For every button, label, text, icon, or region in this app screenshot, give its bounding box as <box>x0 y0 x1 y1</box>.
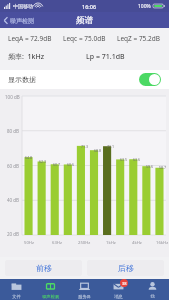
staticText: 前移 <box>36 263 52 273</box>
staticText: Leqc = 75.0dB <box>63 34 106 43</box>
staticText: 后移 <box>118 263 134 273</box>
button[interactable]: 后移 <box>87 260 164 276</box>
staticText: 50Hz <box>24 240 34 246</box>
staticText: 100 dB <box>5 94 20 100</box>
staticText: 64.8 <box>25 155 33 160</box>
staticText: 60.6 <box>67 162 75 167</box>
staticText: 100% <box>138 3 151 10</box>
staticText: 噪声检测 <box>42 294 59 299</box>
staticText: 显示数据 <box>8 75 36 84</box>
button[interactable]: 文件 <box>0 279 33 300</box>
staticText: 80 dB <box>7 128 20 134</box>
button[interactable]: 服务器 <box>67 279 101 300</box>
button[interactable]: 噪声检测 <box>33 279 67 300</box>
button[interactable]: 显示数据 <box>0 70 169 89</box>
staticText: 噪声检测 <box>10 17 34 25</box>
staticText: 我 <box>150 294 155 299</box>
staticText: 20 dB <box>7 231 20 237</box>
staticText: 1kHz <box>106 240 116 246</box>
staticText: 16:06 <box>82 3 97 10</box>
staticText: 58.7 <box>159 165 167 170</box>
button[interactable]: 消息 <box>101 279 135 300</box>
staticText: 服务器 <box>78 294 91 299</box>
staticText: 40 dB <box>7 197 20 203</box>
staticText: 中国移动 <box>13 3 33 9</box>
staticText: 63.5 <box>120 157 128 162</box>
staticText: 4kHz <box>132 240 142 246</box>
staticText: LeqA = 72.9dB <box>8 34 52 43</box>
staticText: 62.3 <box>39 159 47 164</box>
staticText: 63Hz <box>52 240 62 246</box>
staticText: 文件 <box>12 294 21 299</box>
staticText: 71.3 <box>81 144 89 149</box>
staticText: LeqZ = 75.2dB <box>117 34 161 43</box>
staticText: 消息 <box>114 294 123 299</box>
staticText: 38 <box>122 281 127 286</box>
staticText: 71.1 <box>107 144 115 149</box>
staticText: 59.6 <box>146 164 154 169</box>
staticText: 60 dB <box>7 163 20 169</box>
staticText: 250Hz <box>78 240 91 246</box>
staticText: 频率: 1kHz <box>8 52 45 62</box>
staticText: Lp = 71.1dB <box>86 52 125 62</box>
staticText: 60.7 <box>53 162 61 167</box>
staticText: 频谱 <box>76 15 93 26</box>
staticText: 16kHz <box>156 240 169 246</box>
button[interactable]: 返回 <box>0 14 40 27</box>
staticText: 68.8 <box>94 148 102 153</box>
staticText: 63.6 <box>133 157 141 162</box>
button[interactable]: 前移 <box>5 260 82 276</box>
button[interactable]: 我 <box>135 279 169 300</box>
